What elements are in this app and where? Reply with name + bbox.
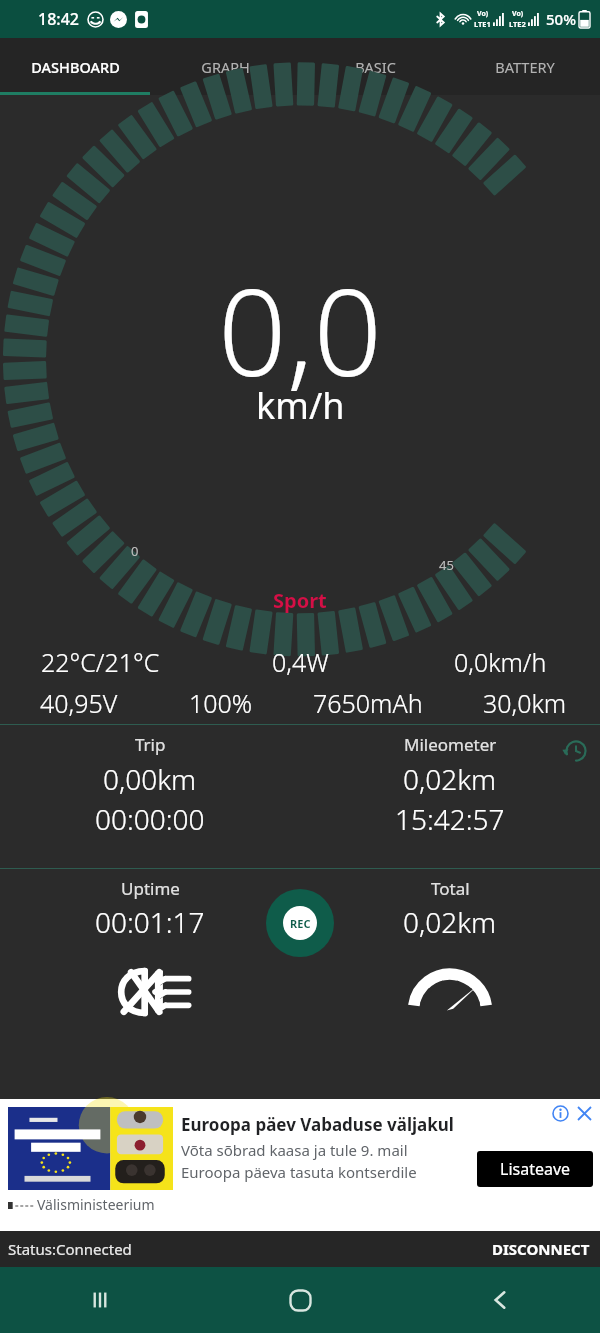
- staticText: Vo): [477, 9, 489, 19]
- staticText: REC: [290, 916, 311, 931]
- staticText: GRAPH: [201, 57, 250, 77]
- staticText: LTE1: [474, 19, 491, 29]
- staticText: 00:01:17: [95, 903, 205, 941]
- button[interactable]: Lisateave: [477, 1151, 593, 1187]
- staticText: DISCONNECT: [492, 1239, 590, 1259]
- staticText: LTE2: [509, 19, 526, 29]
- button[interactable]: Välisministeerium: [0, 1099, 600, 1231]
- staticText: 45: [439, 556, 454, 574]
- button[interactable]: DISCONNECT: [482, 1231, 600, 1267]
- staticText: Mileometer: [404, 733, 497, 756]
- staticText: 0: [131, 542, 139, 560]
- staticText: BATTERY: [495, 57, 555, 77]
- staticText: 50%: [546, 9, 576, 29]
- button[interactable]: Trip: [0, 725, 300, 868]
- staticText: 00:00:00: [95, 800, 205, 838]
- button[interactable]: Ad info: [550, 1103, 570, 1123]
- staticText: 0,0: [218, 248, 383, 411]
- staticText: Total: [431, 877, 470, 900]
- button[interactable]: Headlight off: [0, 949, 300, 1034]
- button[interactable]: BATTERY: [450, 38, 600, 95]
- staticText: BASIC: [355, 57, 396, 77]
- staticText: 0,02km: [403, 903, 497, 941]
- button[interactable]: Record: [266, 889, 334, 957]
- button[interactable]: Speed mode: [300, 949, 600, 1034]
- staticText: km/h: [256, 381, 345, 430]
- staticText: Euroopa päev Vabaduse väljakul: [181, 1113, 454, 1136]
- staticText: 0,4W: [272, 645, 329, 679]
- staticText: Trip: [135, 733, 166, 756]
- button[interactable]: BASIC: [300, 38, 450, 95]
- staticText: Vo): [512, 9, 524, 19]
- staticText: 0,00km: [103, 760, 197, 798]
- staticText: 100%: [189, 686, 253, 720]
- staticText: Sport: [273, 587, 327, 614]
- staticText: Võta sõbrad kaasa ja tule 9. mail Euroop…: [181, 1140, 466, 1183]
- staticText: 7650mAh: [313, 686, 423, 720]
- staticText: 40,95V: [40, 686, 118, 720]
- button[interactable]: Recents: [0, 1267, 200, 1333]
- staticText: Uptime: [121, 877, 180, 900]
- button[interactable]: Total: [300, 869, 600, 949]
- staticText: Lisateave: [500, 1158, 571, 1180]
- button[interactable]: Uptime: [0, 869, 300, 949]
- button[interactable]: GRAPH: [150, 38, 300, 95]
- staticText: 0,02km: [403, 760, 497, 798]
- button[interactable]: Home: [200, 1267, 400, 1333]
- staticText: DASHBOARD: [31, 57, 120, 77]
- staticText: 0,0km/h: [454, 645, 547, 679]
- button[interactable]: Back: [400, 1267, 600, 1333]
- staticText: 15:42:57: [395, 800, 505, 838]
- button[interactable]: Reset trip: [560, 735, 592, 767]
- staticText: Status:Connected: [8, 1239, 132, 1259]
- staticText: Välisministeerium: [37, 1195, 155, 1214]
- staticText: 18:42: [38, 8, 79, 30]
- button[interactable]: Close ad: [574, 1103, 594, 1123]
- staticText: 22°C/21°C: [41, 645, 160, 679]
- button[interactable]: Mileometer: [300, 725, 600, 868]
- button[interactable]: DASHBOARD: [0, 38, 150, 95]
- staticText: 30,0km: [483, 686, 567, 720]
